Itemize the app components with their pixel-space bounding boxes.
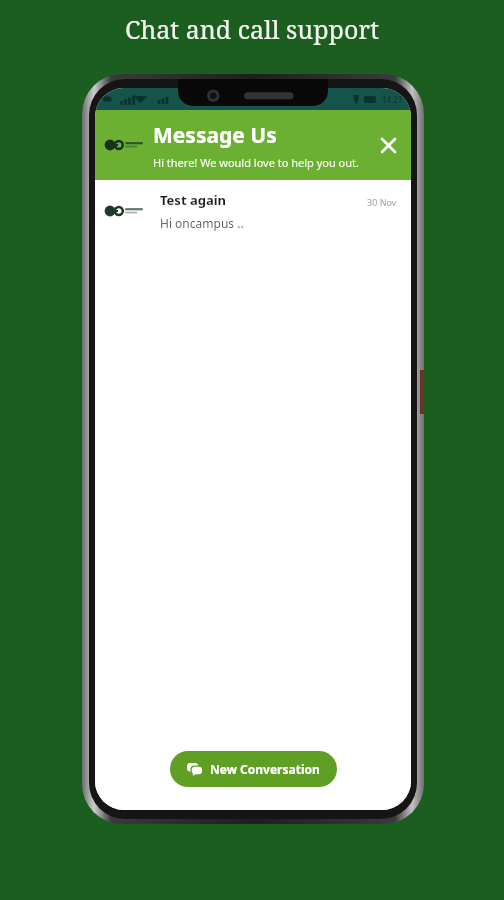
button[interactable]: Test again (95, 180, 411, 242)
staticText: 14:27 (382, 94, 403, 105)
staticText: Hi there! We would love to help you out. (153, 155, 359, 170)
button[interactable]: Close (371, 128, 405, 162)
staticText: New Conversation (210, 761, 320, 777)
staticText: Message Us (153, 121, 277, 150)
button[interactable]: New Conversation (170, 751, 337, 787)
staticText: Hi oncampus .. (160, 215, 244, 231)
staticText: Test again (160, 191, 227, 209)
staticText: 30 Nov (367, 196, 397, 208)
staticText: Chat and call support (125, 12, 379, 46)
